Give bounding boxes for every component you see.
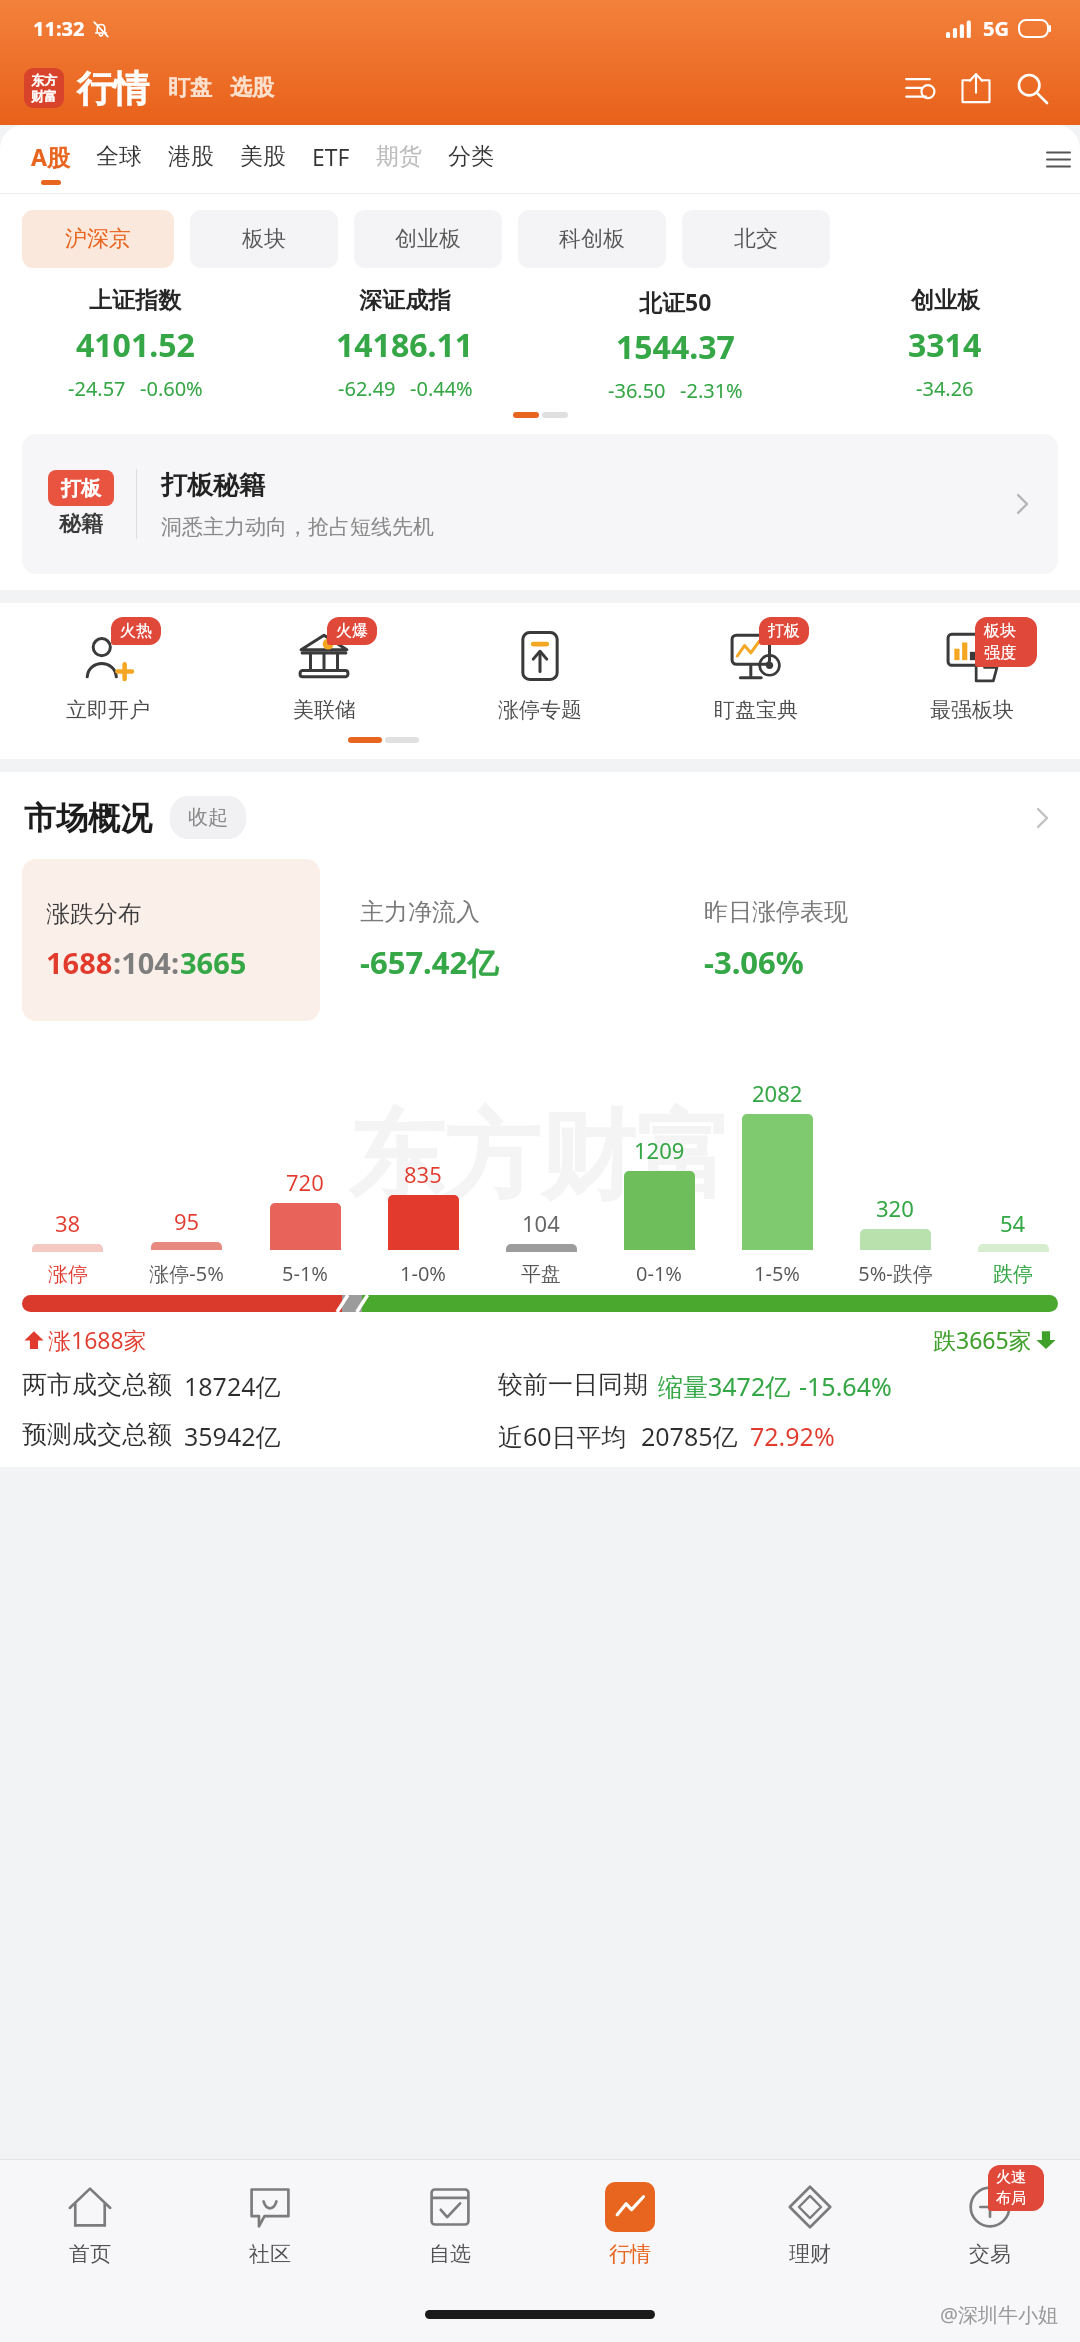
staticText: -62.49 [338, 375, 396, 402]
button[interactable]: 95 [127, 1206, 246, 1287]
staticText: 北交 [734, 225, 778, 253]
staticText: 涨停专题 [498, 697, 582, 723]
button[interactable]: ETF [299, 125, 363, 193]
staticText: 美联储 [293, 697, 356, 723]
button[interactable]: 昨日涨停表现 [680, 859, 1008, 1021]
staticText: 洞悉主力动向，抢占短线先机 [161, 514, 434, 540]
staticText: 选股 [230, 74, 274, 102]
button[interactable]: 104 [482, 1208, 600, 1287]
staticText: 盯盘宝典 [714, 697, 798, 723]
staticText: 3665 [180, 943, 247, 982]
staticText: 火爆 [336, 621, 368, 641]
staticText: 2082 [752, 1078, 803, 1108]
button[interactable]: 自选 [360, 2160, 540, 2286]
staticText: 1-0% [400, 1260, 446, 1287]
button[interactable]: 720 [246, 1167, 364, 1287]
staticText: -3.06% [704, 941, 804, 983]
button[interactable]: 选股 [227, 71, 277, 105]
staticText: 期货 [376, 142, 422, 171]
staticText: 板块 [242, 225, 286, 253]
staticText: 北证50 [639, 286, 712, 317]
button[interactable]: A股 [18, 125, 83, 193]
button[interactable]: 科创板 [518, 210, 666, 268]
staticText: -15.64% [799, 1369, 892, 1403]
button[interactable]: 1209 [600, 1135, 718, 1287]
button[interactable]: 港股 [155, 125, 227, 193]
staticText: 缩量3472亿 [658, 1369, 791, 1403]
staticText: 1688 [46, 943, 113, 982]
button[interactable]: 板块强度 [864, 623, 1080, 723]
button[interactable]: 38 [8, 1208, 127, 1287]
button[interactable]: 上证指数 [0, 286, 270, 402]
button[interactable]: 行情 [540, 2160, 720, 2286]
staticText: 昨日涨停表现 [704, 897, 848, 927]
staticText: 1544.37 [616, 325, 735, 369]
staticText: 打板 [768, 621, 800, 641]
button[interactable]: 市场概况 [24, 796, 1056, 839]
button[interactable]: Search [1010, 66, 1054, 110]
staticText: 首页 [69, 2241, 111, 2267]
staticText: 两市成交总额 [22, 1369, 172, 1400]
staticText: 行情 [77, 66, 149, 111]
button[interactable]: 打板 [22, 434, 1058, 574]
staticText: 95 [174, 1206, 200, 1236]
staticText: @深圳牛小姐 [940, 2301, 1058, 2328]
staticText: 涨停 [48, 1262, 88, 1287]
staticText: -24.57 [68, 375, 126, 402]
staticText: 板块强度 [984, 621, 1028, 663]
button[interactable]: 320 [836, 1193, 954, 1287]
button[interactable]: 北交 [682, 210, 830, 268]
button[interactable]: 分类 [435, 125, 507, 193]
button[interactable]: 首页 [0, 2160, 180, 2286]
staticText: 火热 [120, 621, 152, 641]
button[interactable]: 板块 [190, 210, 338, 268]
button[interactable]: 835 [364, 1159, 482, 1287]
staticText: 财富 [31, 88, 57, 104]
staticText: 打板秘籍 [161, 469, 265, 502]
button[interactable]: 2082 [718, 1078, 836, 1287]
staticText: 社区 [249, 2241, 291, 2267]
button[interactable]: 美股 [227, 125, 299, 193]
button[interactable]: 社区 [180, 2160, 360, 2286]
button[interactable]: More tabs [1036, 125, 1080, 193]
button[interactable]: 期货 [363, 125, 435, 193]
button[interactable]: 创业板 [810, 286, 1080, 402]
staticText: 秘籍 [59, 510, 103, 538]
staticText: 打板 [61, 476, 101, 501]
button[interactable]: 54 [954, 1208, 1072, 1287]
button[interactable]: 沪深京 [22, 210, 174, 268]
staticText: :104: [113, 943, 180, 982]
staticText: 54 [1000, 1208, 1026, 1238]
button[interactable]: 理财 [720, 2160, 900, 2286]
button[interactable]: 打板 [648, 623, 864, 723]
staticText: 较前一日同期 [498, 1369, 648, 1400]
button[interactable]: 北证50 [540, 286, 810, 404]
button[interactable]: Share [954, 66, 998, 110]
staticText: 全球 [96, 142, 142, 171]
staticText: 理财 [789, 2241, 831, 2267]
staticText: -34.26 [916, 375, 974, 402]
staticText: 0-1% [636, 1260, 682, 1287]
staticText: 1-5% [754, 1260, 800, 1287]
button[interactable]: 火速布局 [900, 2160, 1080, 2286]
button[interactable]: 火爆 [216, 623, 432, 723]
button[interactable]: 收起 [170, 796, 246, 839]
staticText: 涨跌分布 [46, 899, 142, 929]
button[interactable]: 主力净流入 [336, 859, 664, 1021]
staticText: -2.31% [680, 377, 743, 404]
button[interactable]: 涨跌分布 [22, 859, 320, 1021]
button[interactable]: 深证成指 [270, 286, 540, 402]
staticText: 美股 [240, 142, 286, 171]
staticText: 涨1688家 [48, 1324, 147, 1355]
staticText: 预测成交总额 [22, 1419, 172, 1450]
button[interactable]: 涨停专题 [432, 623, 648, 723]
button[interactable]: 全球 [83, 125, 155, 193]
staticText: 火速布局 [996, 2168, 1036, 2208]
staticText: 720 [286, 1167, 324, 1197]
button[interactable]: 创业板 [354, 210, 502, 268]
staticText: 5G [983, 15, 1009, 42]
staticText: 14186.11 [336, 323, 474, 367]
button[interactable]: 盯盘 [165, 71, 215, 105]
button[interactable]: Filter [898, 66, 942, 110]
button[interactable]: 火热 [0, 623, 216, 723]
